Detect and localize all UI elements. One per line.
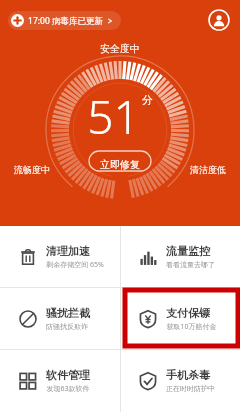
button[interactable]: 17:00 病毒库已更新 xyxy=(8,11,121,30)
button[interactable]: 立即修复 xyxy=(86,154,154,175)
staticText: 获取10万赔付金 xyxy=(166,322,217,332)
staticText: 51 xyxy=(87,85,140,148)
button[interactable]: 流量监控 xyxy=(120,226,240,287)
button[interactable]: 软件管理 xyxy=(0,350,120,411)
staticText: 分 xyxy=(142,93,153,107)
staticText: 支付保镖 xyxy=(166,306,210,320)
staticText: 流畅度中 xyxy=(14,164,50,175)
staticText: 防骚扰反欺诈 xyxy=(46,322,88,331)
staticText: 看看流量去哪了 xyxy=(166,260,215,269)
staticText: 清理加速 xyxy=(46,244,90,258)
staticText: 立即修复 xyxy=(100,158,140,171)
staticText: 正在时时防护中 xyxy=(166,384,215,393)
staticText: 清洁度低 xyxy=(190,164,226,175)
button[interactable]: 支付保镖 xyxy=(120,288,240,349)
staticText: 软件管理 xyxy=(46,368,90,382)
button[interactable]: 手机杀毒 xyxy=(120,350,240,411)
button[interactable]: 骚扰拦截 xyxy=(0,288,120,349)
staticText: 骚扰拦截 xyxy=(46,306,90,320)
staticText: 手机杀毒 xyxy=(166,368,210,382)
button[interactable]: Account xyxy=(208,9,230,31)
button[interactable]: 清理加速 xyxy=(0,226,120,287)
staticText: 剩余存储空间 65% xyxy=(46,260,104,270)
staticText: 流量监控 xyxy=(166,244,210,258)
staticText: 发现63款软件 xyxy=(46,384,90,394)
staticText: 17:00 病毒库已更新 xyxy=(28,15,103,27)
staticText: 安全度中 xyxy=(100,42,140,55)
